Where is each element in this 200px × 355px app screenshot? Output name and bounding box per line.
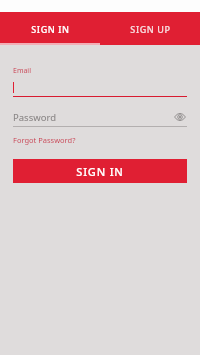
button[interactable]: Password xyxy=(13,110,187,127)
staticText: Email xyxy=(13,66,31,76)
button[interactable]: Forgot Password? xyxy=(13,135,76,145)
button[interactable]: SIGN IN xyxy=(13,159,187,183)
staticText: SIGN IN xyxy=(31,23,70,35)
staticText: Forgot Password? xyxy=(13,135,76,145)
staticText: SIGN UP xyxy=(130,23,171,35)
button[interactable]: Show password xyxy=(173,110,187,124)
button[interactable]: SIGN IN xyxy=(0,12,100,45)
button[interactable]: Email xyxy=(13,66,187,97)
button[interactable]: SIGN UP xyxy=(100,12,200,45)
staticText: SIGN IN xyxy=(76,164,124,179)
staticText: Password xyxy=(13,111,173,124)
